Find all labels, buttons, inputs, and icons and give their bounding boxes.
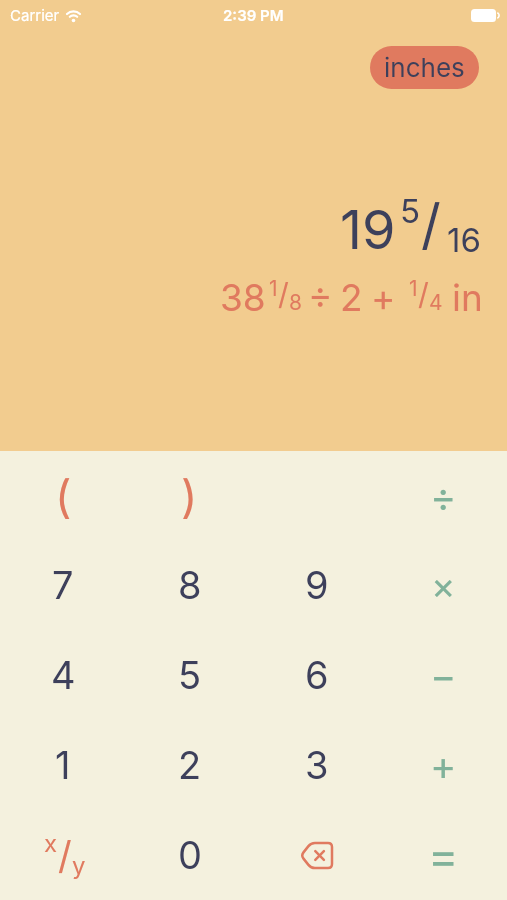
staticText: in xyxy=(452,275,483,320)
staticText: 4 xyxy=(429,290,443,315)
staticText: 7 xyxy=(52,562,74,608)
button[interactable]: inches xyxy=(370,46,479,89)
button[interactable]: 2 xyxy=(126,720,253,810)
button[interactable]: ) xyxy=(126,451,253,540)
staticText: x xyxy=(44,829,58,858)
staticText: 9 xyxy=(305,562,329,608)
staticText: ÷ xyxy=(308,272,333,317)
button[interactable]: ( xyxy=(0,451,126,540)
button[interactable]: 7 xyxy=(0,540,126,630)
staticText: 8 xyxy=(178,562,202,608)
staticText: 2 xyxy=(178,742,202,788)
staticText: × xyxy=(431,563,456,608)
staticText: + xyxy=(371,275,396,320)
staticText: 8 xyxy=(289,290,302,315)
button[interactable]: = xyxy=(380,810,507,900)
button[interactable]: 9 xyxy=(253,540,380,630)
staticText: 0 xyxy=(178,832,202,878)
staticText: = xyxy=(428,827,459,883)
button[interactable]: × xyxy=(380,540,507,630)
button[interactable] xyxy=(253,810,380,900)
staticText: 1 xyxy=(55,742,71,788)
staticText: inches xyxy=(384,52,465,83)
staticText: 6 xyxy=(305,652,329,698)
button[interactable]: 1 xyxy=(0,720,126,810)
staticText: ÷ xyxy=(430,472,457,520)
button[interactable]: ÷ xyxy=(380,451,507,540)
staticText: / xyxy=(418,276,429,312)
staticText: ) xyxy=(181,469,198,523)
staticText: ( xyxy=(55,469,72,523)
staticText: 1 xyxy=(269,276,278,301)
staticText: / xyxy=(278,276,289,312)
staticText: 16 xyxy=(447,220,481,260)
staticText: 2 xyxy=(340,275,363,320)
staticText: 5 xyxy=(400,191,421,231)
staticText: / xyxy=(421,191,441,258)
staticText: 19 xyxy=(340,197,396,262)
button[interactable]: 8 xyxy=(126,540,253,630)
staticText: + xyxy=(430,741,457,789)
button[interactable]: 5 xyxy=(126,630,253,720)
button[interactable]: 4 xyxy=(0,630,126,720)
button[interactable]: − xyxy=(380,630,507,720)
staticText: 3 xyxy=(305,742,329,788)
staticText: 2:39 PM xyxy=(223,6,284,24)
button[interactable]: 0 xyxy=(126,810,253,900)
button[interactable]: + xyxy=(380,720,507,810)
staticText: − xyxy=(430,651,457,699)
staticText: 1 xyxy=(409,276,418,301)
staticText: y xyxy=(72,851,86,880)
staticText: Carrier xyxy=(10,6,60,24)
button[interactable]: 6 xyxy=(253,630,380,720)
staticText: 5 xyxy=(178,652,202,698)
staticText: / xyxy=(58,832,72,878)
staticText: 38 xyxy=(220,275,266,320)
button[interactable]: 3 xyxy=(253,720,380,810)
button[interactable]: x xyxy=(0,810,126,900)
staticText: 4 xyxy=(51,652,76,698)
